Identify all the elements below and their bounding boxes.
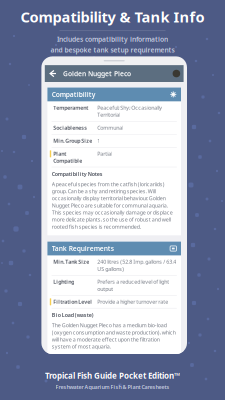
staticText: Bio Load (waste) — [52, 311, 94, 319]
staticText: Compatibility & Tank Info — [20, 7, 204, 26]
button[interactable]: Golden Nugget Pleco — [45, 65, 184, 82]
staticText: Filtration Level — [53, 298, 92, 305]
staticText: Freshwater Aquarium Fish & Plant Careshe… — [55, 383, 169, 390]
staticText: Lighting — [53, 278, 74, 285]
staticText: Includes compatibility information — [57, 35, 168, 43]
staticText: The Golden Nugget Pleco has a medium bio… — [52, 322, 176, 350]
staticText: Min. Group Size — [53, 137, 92, 144]
staticText: Compatibility Notes — [52, 170, 103, 177]
staticText: A peaceful species from the catfish (lor… — [52, 180, 173, 230]
staticText: Prefers a reduced level of light output — [97, 278, 169, 292]
staticText: Communal — [97, 124, 123, 131]
staticText: Provide a higher turnover rate — [97, 298, 168, 305]
staticText: Min. Tank Size — [53, 258, 89, 265]
staticText: Golden Nugget Pleco — [63, 69, 131, 78]
staticText: Tank Requirements — [52, 244, 114, 253]
staticText: Temperament — [53, 104, 88, 111]
staticText: Compatibility — [52, 90, 96, 99]
staticText: Peaceful; Shy; Occasionally Territorial — [97, 104, 162, 118]
staticText: Sociableness — [53, 124, 87, 131]
staticText: Plant Compatible — [53, 150, 82, 164]
staticText: Partial — [97, 150, 112, 157]
staticText: 1 — [97, 137, 100, 144]
staticText: 240 litres (52.8 Imp. gallons / 63.4 US … — [97, 258, 176, 272]
staticText: and bespoke tank setup requirements — [50, 45, 174, 54]
staticText: Tropical Fish Guide Pocket Edition™ — [45, 370, 180, 381]
